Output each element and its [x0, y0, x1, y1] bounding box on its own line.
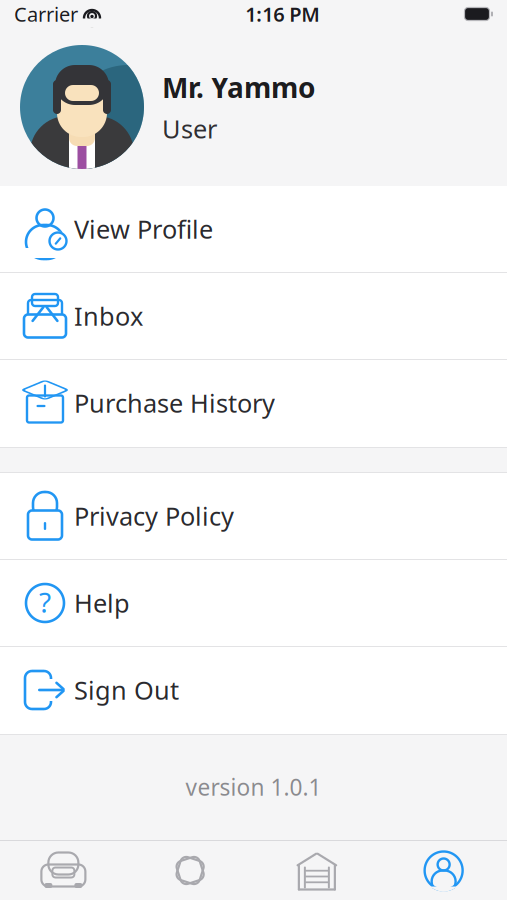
staticText: Mr. Yammo	[162, 69, 316, 106]
button[interactable]: Mr. Yammo	[0, 28, 507, 186]
button[interactable]: Purchase History	[0, 360, 507, 447]
staticText: View Profile	[74, 212, 213, 246]
button[interactable]: Favorites	[127, 841, 254, 900]
staticText: 1:16 PM	[245, 1, 320, 27]
button[interactable]: Sign Out	[0, 647, 507, 734]
button[interactable]: Cars	[0, 841, 127, 900]
staticText: User	[162, 112, 217, 145]
button[interactable]: Privacy Policy	[0, 473, 507, 560]
button[interactable]: Inbox	[0, 273, 507, 360]
staticText: version 1.0.1	[185, 772, 321, 802]
button[interactable]: View Profile	[0, 186, 507, 273]
staticText: Carrier	[14, 1, 78, 27]
staticText: Purchase History	[74, 386, 275, 420]
button[interactable]: Garage	[253, 841, 380, 900]
staticText: Inbox	[74, 299, 143, 333]
button[interactable]: ?	[0, 560, 507, 647]
staticText: Sign Out	[74, 673, 179, 707]
staticText: ?	[39, 583, 51, 621]
button[interactable]: Profile	[380, 841, 507, 900]
staticText: Help	[74, 586, 130, 620]
staticText: Privacy Policy	[74, 499, 234, 533]
